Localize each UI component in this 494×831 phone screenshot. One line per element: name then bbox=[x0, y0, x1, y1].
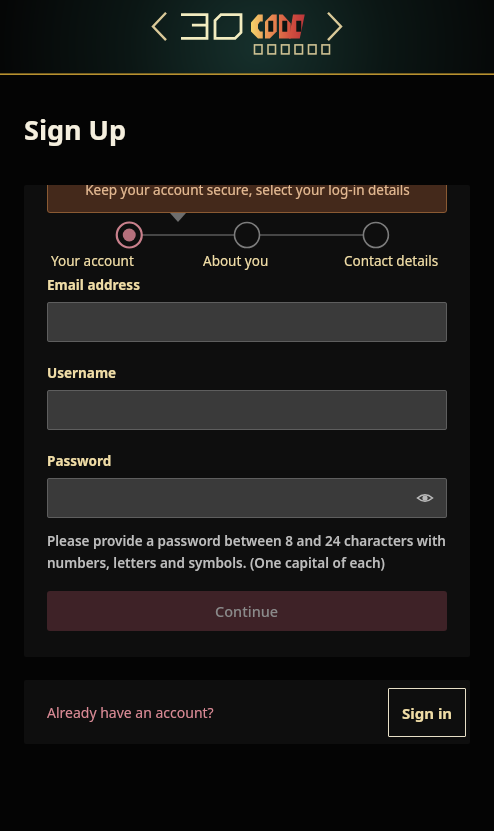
button[interactable] bbox=[47, 390, 447, 430]
staticText: Already have an account? bbox=[47, 703, 214, 722]
staticText: Continue bbox=[215, 601, 279, 621]
staticText: Username bbox=[47, 364, 117, 382]
staticText: Your account bbox=[51, 252, 134, 270]
staticText: Keep your account secure, select your lo… bbox=[85, 185, 410, 199]
staticText: About you bbox=[203, 252, 269, 270]
staticText: Password bbox=[47, 452, 112, 470]
staticText: Sign Up bbox=[24, 111, 127, 148]
staticText: Email address bbox=[47, 276, 140, 294]
staticText: Contact details bbox=[344, 252, 439, 270]
button[interactable]: Show password bbox=[413, 486, 437, 510]
button[interactable]: Sign in bbox=[388, 688, 466, 737]
staticText: Sign in bbox=[402, 703, 453, 723]
button[interactable] bbox=[47, 302, 447, 342]
staticText: Please provide a password between 8 and … bbox=[47, 532, 447, 572]
button[interactable]: Show password bbox=[47, 478, 447, 518]
button[interactable]: Continue bbox=[47, 591, 447, 631]
